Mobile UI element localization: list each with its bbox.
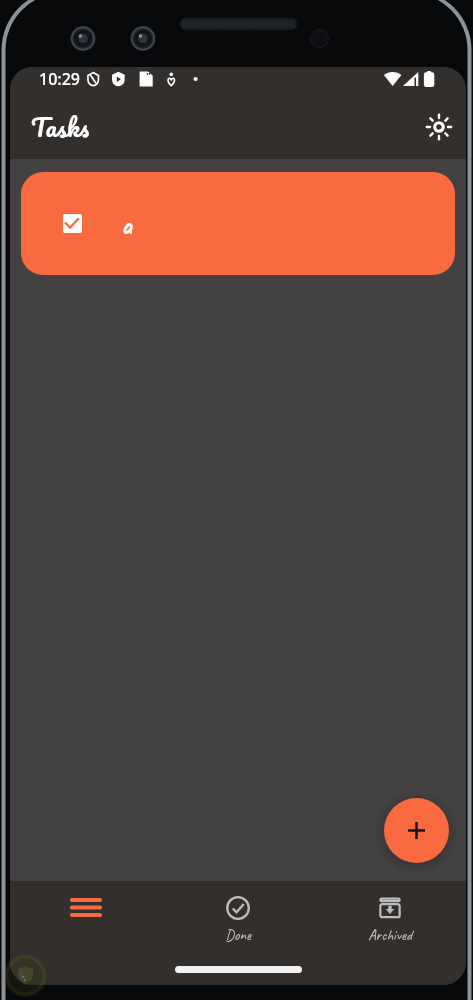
staticText: a [123, 213, 134, 245]
staticText: Tasks [31, 106, 90, 148]
staticText: Done [225, 926, 251, 945]
button[interactable]: Toggle theme [418, 106, 460, 148]
staticText: 10:29 [39, 68, 80, 90]
button[interactable]: Add task [384, 798, 449, 863]
button[interactable]: Done [162, 881, 314, 953]
staticText: Archived [368, 926, 412, 945]
button[interactable]: a [21, 172, 455, 275]
button[interactable]: Tasks list [10, 881, 162, 953]
button[interactable]: Archived [314, 881, 466, 953]
